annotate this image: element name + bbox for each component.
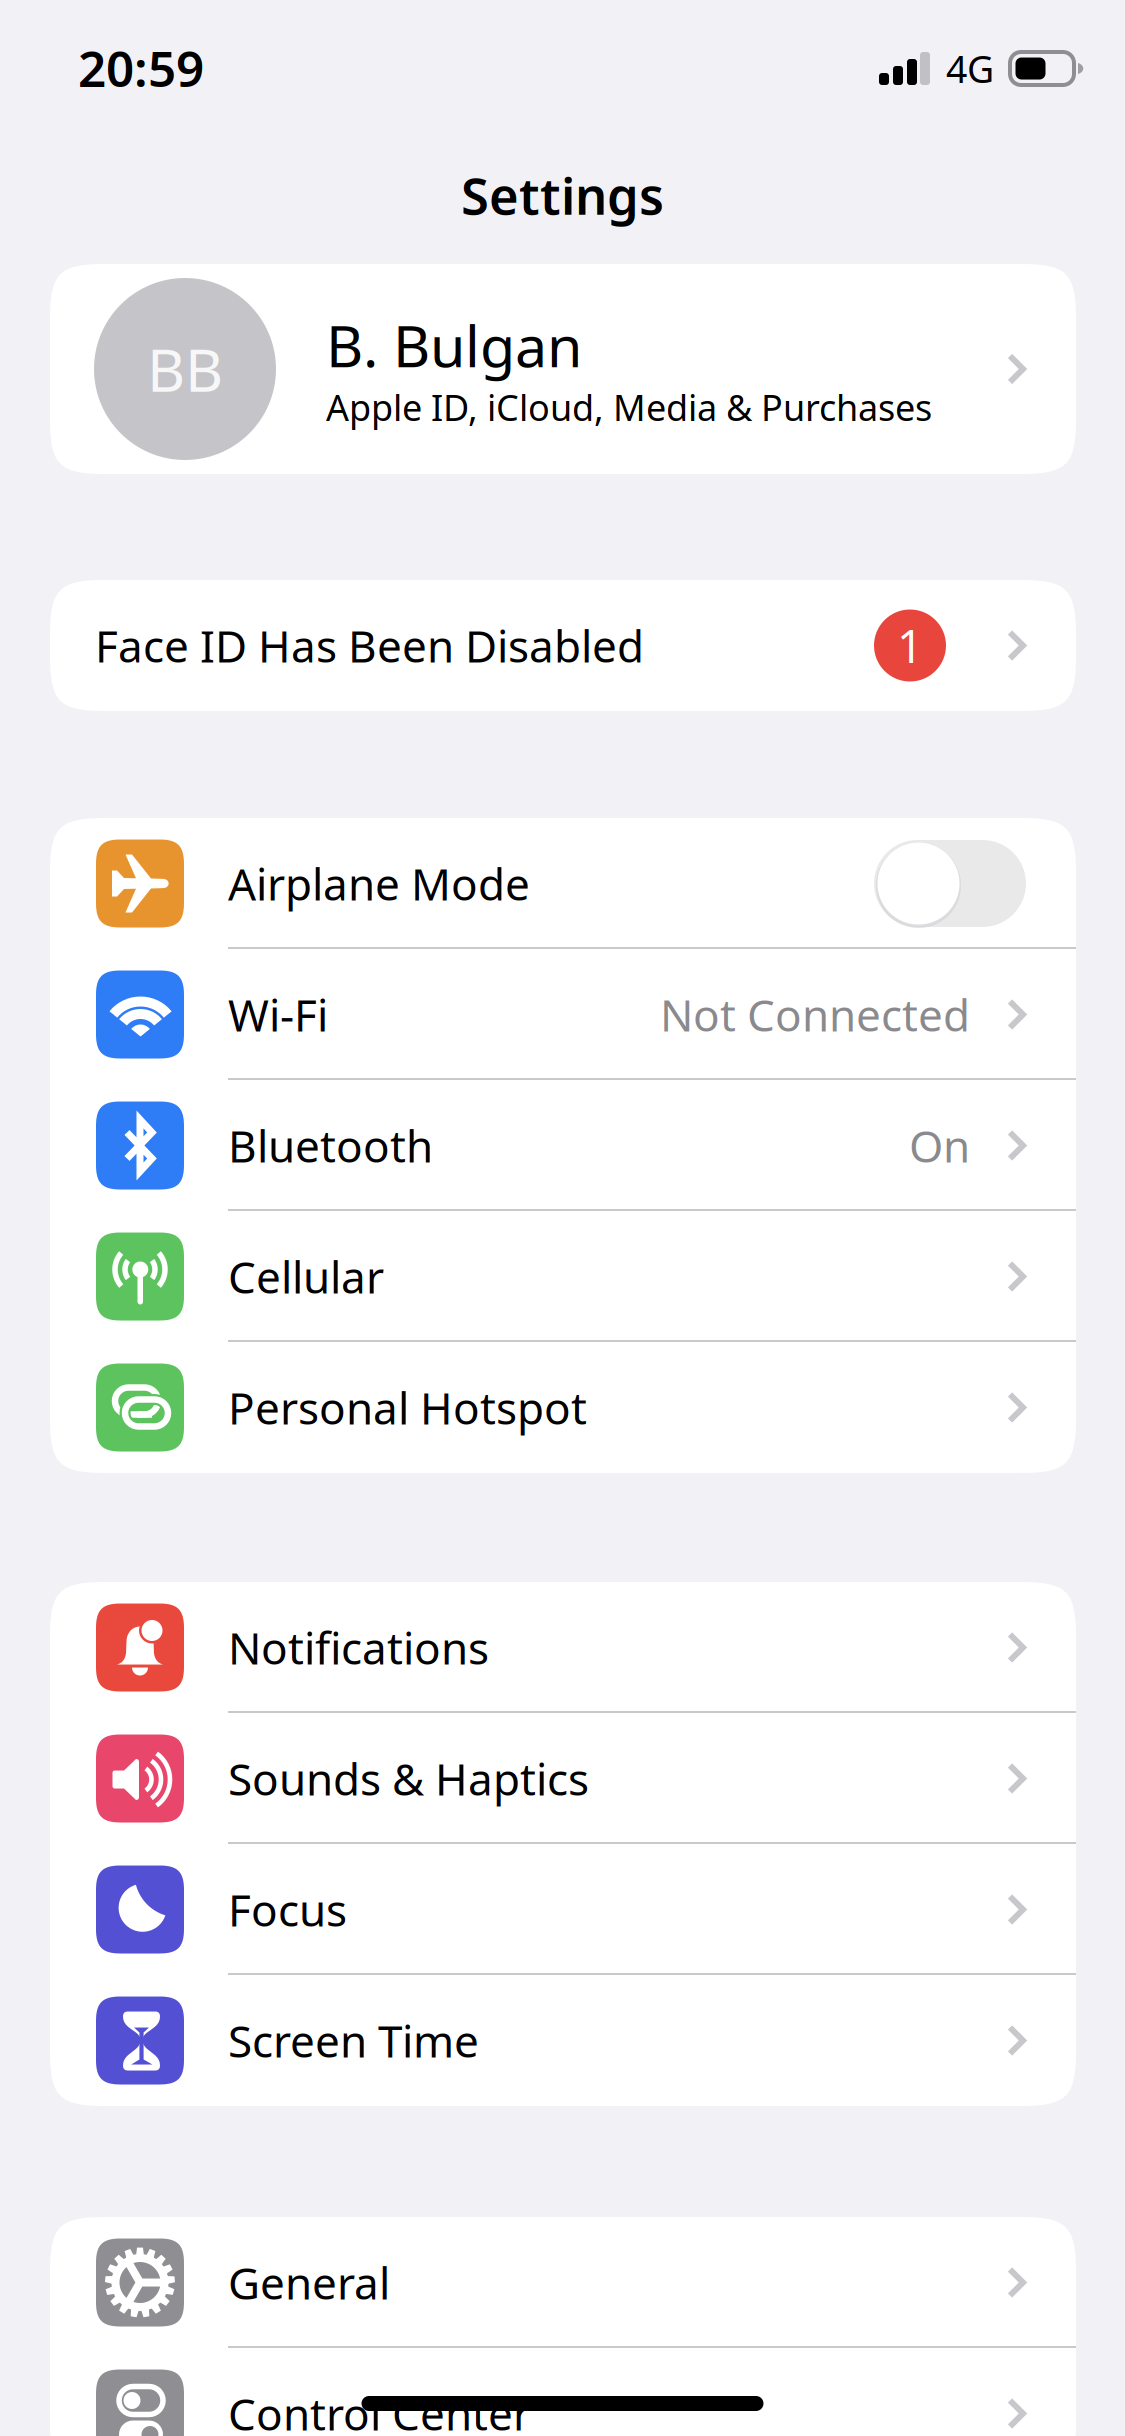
button[interactable]: Wi-Fi [50,949,1076,1080]
staticText: Focus [228,1880,347,1939]
button[interactable]: Screen Time [50,1975,1076,2106]
staticText: Bluetooth [228,1116,433,1175]
staticText: Control Center [228,2384,531,2436]
staticText: B. Bulgan [326,307,582,383]
staticText: Notifications [228,1618,489,1677]
staticText: Personal Hotspot [228,1378,587,1437]
button[interactable]: BB [50,264,1076,474]
staticText: 1 [897,615,923,676]
staticText: BB [147,330,223,408]
staticText: Airplane Mode [228,854,530,913]
button[interactable]: Sounds & Haptics [50,1713,1076,1844]
button[interactable]: Face ID Has Been Disabled [50,580,1076,711]
button[interactable]: Airplane Mode [50,818,1076,949]
staticText: General [228,2253,390,2312]
staticText: Cellular [228,1247,384,1306]
button[interactable]: Cellular [50,1211,1076,1342]
staticText: Face ID Has Been Disabled [95,616,644,675]
button[interactable]: Control Center [50,2348,1076,2436]
staticText: Screen Time [228,2011,479,2070]
staticText: 4G [946,44,994,93]
staticText: Settings [461,161,664,229]
staticText: Sounds & Haptics [228,1749,589,1808]
staticText: 20:59 [78,35,204,100]
staticText: Apple ID, iCloud, Media & Purchases [326,383,932,431]
button[interactable]: Focus [50,1844,1076,1975]
staticText: Wi-Fi [228,985,328,1044]
staticText: Not Connected [660,985,970,1044]
button[interactable]: General [50,2217,1076,2348]
button[interactable]: Notifications [50,1582,1076,1713]
staticText: On [909,1116,970,1175]
button[interactable]: Personal Hotspot [50,1342,1076,1473]
button[interactable]: Bluetooth [50,1080,1076,1211]
